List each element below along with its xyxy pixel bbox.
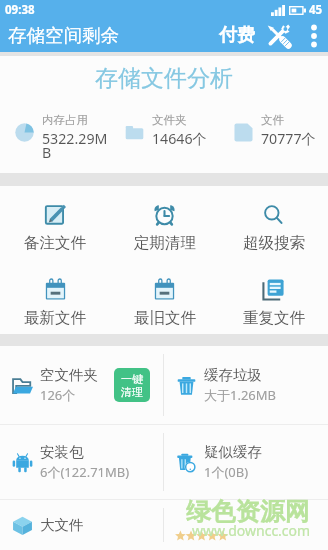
staticText: 超级搜索 xyxy=(243,233,305,253)
staticText: 最新文件 xyxy=(24,308,86,328)
button[interactable]: 疑似缓存 xyxy=(164,425,328,499)
button[interactable]: 最旧文件 xyxy=(110,279,219,328)
staticText: 45 xyxy=(309,2,323,18)
button[interactable]: 备注文件 xyxy=(0,204,110,253)
button[interactable]: 安装包 xyxy=(0,425,163,499)
staticText: 定期清理 xyxy=(134,233,196,253)
staticText: 缓存垃圾 xyxy=(204,366,262,384)
button[interactable]: 存储文件分析 xyxy=(0,56,328,173)
staticText: 6个(122.71MB) xyxy=(40,463,130,481)
staticText: 大于1.26MB xyxy=(204,386,277,404)
staticText: 最旧文件 xyxy=(134,308,196,328)
staticText: 5322.29MB xyxy=(42,129,110,163)
staticText: 备注文件 xyxy=(24,233,86,253)
staticText: 14646个 xyxy=(152,129,207,148)
staticText: 空文件夹 xyxy=(40,366,98,384)
button[interactable]: 超级搜索 xyxy=(219,204,328,253)
staticText: 70777个 xyxy=(261,129,316,148)
button[interactable]: Tools xyxy=(257,19,300,52)
staticText: 大文件 xyxy=(40,516,84,534)
button[interactable]: 大文件 xyxy=(0,500,163,550)
button[interactable]: 一键 清理 xyxy=(114,368,150,402)
staticText: 重复文件 xyxy=(243,308,305,328)
staticText: 一键 清理 xyxy=(121,372,143,399)
button[interactable]: 最新文件 xyxy=(0,279,110,328)
staticText: 09:38 xyxy=(5,2,35,18)
staticText: 存储空间剩余 xyxy=(8,24,119,47)
staticText: 绿色资源网 xyxy=(186,496,310,527)
staticText: 文件夹 xyxy=(152,113,187,127)
button[interactable]: 定期清理 xyxy=(110,204,219,253)
staticText: 付费 xyxy=(219,24,255,47)
staticText: 内存占用 xyxy=(42,113,88,127)
button[interactable]: 付费 xyxy=(217,20,257,51)
staticText: 文件 xyxy=(261,113,284,127)
staticText: 1个(0B) xyxy=(204,463,249,481)
button[interactable]: 空文件夹 xyxy=(0,346,163,424)
button[interactable]: 重复文件 xyxy=(219,279,328,328)
staticText: www.downcc.com xyxy=(192,521,311,540)
staticText: 存储文件分析 xyxy=(0,64,328,93)
button[interactable]: 缓存垃圾 xyxy=(164,346,328,424)
staticText: 126个 xyxy=(40,386,76,404)
staticText: 安装包 xyxy=(40,443,84,461)
staticText: 疑似缓存 xyxy=(204,443,262,461)
button[interactable]: More options xyxy=(300,19,328,52)
